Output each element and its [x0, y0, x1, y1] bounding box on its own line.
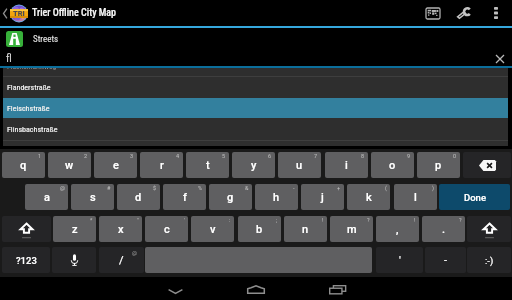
button[interactable]: p: [417, 152, 460, 178]
button[interactable]: Fleischstraße: [3, 98, 508, 118]
button[interactable]: ?123: [2, 247, 50, 273]
button[interactable]: q: [2, 152, 45, 178]
staticText: 1: [38, 153, 42, 159]
staticText: Flachsmarktweg: [7, 68, 57, 70]
button[interactable]: n: [284, 216, 327, 242]
button[interactable]: i: [325, 152, 368, 178]
staticText: w: [65, 159, 74, 172]
button[interactable]: Recent apps: [317, 277, 357, 300]
button[interactable]: y: [232, 152, 275, 178]
button[interactable]: ,: [376, 216, 419, 242]
button[interactable]: Show map: [416, 0, 449, 26]
button[interactable]: d: [117, 184, 160, 210]
button[interactable]: x: [99, 216, 142, 242]
staticText: d: [135, 191, 142, 204]
button[interactable]: t: [186, 152, 229, 178]
staticText: o: [389, 159, 396, 172]
staticText: h: [273, 191, 280, 204]
staticText: x: [118, 223, 124, 236]
button[interactable]: Hide keyboard: [155, 277, 195, 300]
staticText: y: [251, 159, 257, 172]
staticText: u: [296, 159, 303, 172]
button[interactable]: .: [422, 216, 465, 242]
staticText: 4: [176, 153, 180, 159]
staticText: ': [399, 254, 401, 267]
staticText: m: [347, 223, 357, 236]
staticText: 2: [84, 153, 88, 159]
button[interactable]: Done: [439, 184, 510, 210]
button[interactable]: u: [278, 152, 321, 178]
staticText: q: [20, 159, 27, 172]
button[interactable]: Streets: [0, 28, 512, 50]
button[interactable]: Settings: [449, 0, 479, 26]
staticText: a: [44, 191, 50, 204]
staticText: v: [210, 223, 216, 236]
staticText: %: [198, 185, 203, 191]
staticText: Streets: [33, 34, 59, 45]
button[interactable]: m: [330, 216, 373, 242]
staticText: j: [321, 191, 324, 204]
staticText: !: [414, 217, 416, 223]
button[interactable]: Shift: [467, 216, 511, 242]
staticText: r: [160, 159, 164, 172]
button[interactable]: o: [371, 152, 414, 178]
button[interactable]: g: [209, 184, 252, 210]
staticText: ,: [396, 223, 399, 236]
staticText: i: [345, 159, 348, 172]
button[interactable]: b: [238, 216, 281, 242]
button[interactable]: Home: [236, 277, 276, 300]
button[interactable]: c: [145, 216, 188, 242]
button[interactable]: e: [94, 152, 137, 178]
button[interactable]: h: [255, 184, 298, 210]
button[interactable]: r: [140, 152, 183, 178]
staticText: ?: [367, 217, 370, 223]
staticText: 7: [314, 153, 318, 159]
button[interactable]: Backspace: [463, 152, 511, 178]
staticText: f: [183, 191, 187, 204]
button[interactable]: s: [71, 184, 114, 210]
staticText: Flinsbachstraße: [7, 125, 58, 134]
button[interactable]: z: [53, 216, 96, 242]
staticText: .: [442, 223, 446, 236]
staticText: e: [113, 159, 119, 172]
staticText: !: [322, 217, 324, 223]
staticText: Done: [464, 192, 486, 203]
staticText: :: [229, 217, 231, 223]
button[interactable]: Flanderstraße: [3, 77, 508, 98]
button[interactable]: j: [301, 184, 344, 210]
staticText: ;: [276, 217, 278, 223]
staticText: @: [60, 185, 65, 191]
button[interactable]: :-): [467, 247, 511, 273]
staticText: 0: [453, 153, 457, 159]
button[interactable]: w: [48, 152, 91, 178]
staticText: 5: [222, 153, 226, 159]
button[interactable]: -: [425, 247, 466, 273]
button[interactable]: f: [163, 184, 206, 210]
button[interactable]: /: [99, 247, 144, 273]
staticText: p: [435, 159, 442, 172]
staticText: 8: [361, 153, 365, 159]
staticText: Fleischstraße: [7, 104, 50, 113]
button[interactable]: Clear text: [490, 51, 510, 66]
button[interactable]: Shift: [2, 216, 51, 242]
button[interactable]: v: [191, 216, 234, 242]
button[interactable]: l: [394, 184, 437, 210]
staticText: +: [337, 185, 341, 191]
staticText: l: [414, 191, 417, 204]
button[interactable]: TRI: [0, 0, 117, 26]
button[interactable]: Flinsbachstraße: [3, 119, 508, 140]
button[interactable]: Voice input: [52, 247, 96, 273]
staticText: 9: [407, 153, 411, 159]
staticText: Flanderstraße: [7, 83, 51, 92]
button[interactable]: Flachsmarktweg: [3, 68, 508, 76]
button[interactable]: a: [25, 184, 68, 210]
button[interactable]: ': [376, 247, 423, 273]
button[interactable]: k: [347, 184, 390, 210]
staticText: #: [107, 185, 111, 191]
staticText: ": [137, 217, 139, 223]
button[interactable]: More options: [479, 0, 512, 26]
staticText: &: [245, 185, 249, 191]
staticText: Trier Offline City Map: [32, 7, 117, 19]
staticText: ): [432, 185, 434, 191]
